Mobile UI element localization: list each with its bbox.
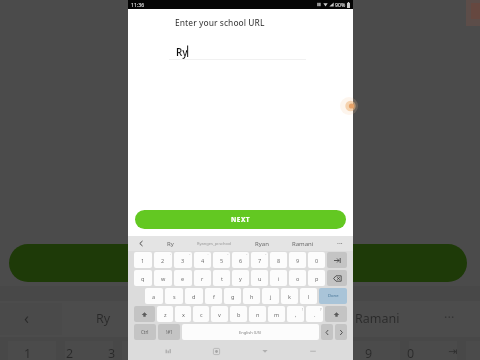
button[interactable]: Shift <box>134 306 155 322</box>
button[interactable]: 4 <box>194 252 211 268</box>
staticText: ! <box>302 307 303 312</box>
button[interactable]: l <box>300 288 317 304</box>
button[interactable]: Ramani <box>280 236 326 251</box>
staticText: p <box>315 275 319 282</box>
staticText: x <box>182 311 185 318</box>
staticText: ˘ <box>246 253 248 258</box>
button[interactable]: Back <box>256 342 274 360</box>
button[interactable]: 6 <box>232 252 249 268</box>
staticText: Ramani <box>292 240 314 248</box>
button[interactable]: English (US) <box>182 324 319 340</box>
button[interactable]: 2 <box>154 252 172 268</box>
button[interactable]: e <box>174 270 192 286</box>
staticText: ··· <box>444 308 455 326</box>
button[interactable]: d <box>185 288 203 304</box>
button[interactable]: 5 <box>213 252 230 268</box>
button[interactable]: t <box>213 270 230 286</box>
button[interactable]: v <box>211 306 228 322</box>
button[interactable]: u <box>251 270 268 286</box>
button[interactable]: j <box>262 288 279 304</box>
button[interactable]: Ry <box>154 236 186 251</box>
button[interactable]: 7 <box>251 252 268 268</box>
button[interactable]: 1 <box>134 252 152 268</box>
staticText: b <box>237 311 241 318</box>
button[interactable]: b <box>230 306 247 322</box>
staticText: ? <box>320 307 322 312</box>
staticText: 8 <box>277 257 281 264</box>
staticText: Ry <box>167 240 174 248</box>
staticText: ¨ <box>207 253 210 258</box>
button[interactable]: !#1 <box>158 324 180 340</box>
staticText: Ryanges_pr.school <box>197 241 232 246</box>
button[interactable]: Shift <box>325 306 347 322</box>
button[interactable]: Ryanges_pr.school <box>186 236 243 251</box>
staticText: s <box>173 293 176 300</box>
button[interactable]: g <box>224 288 241 304</box>
staticText: ´ <box>170 253 171 258</box>
button[interactable]: m <box>268 306 285 322</box>
button[interactable]: 0 <box>308 252 325 268</box>
staticText: ˇ <box>189 253 191 258</box>
button[interactable]: Previous suggestions <box>128 236 154 251</box>
button[interactable]: Move cursor left <box>321 324 333 340</box>
button[interactable]: Move cursor right <box>335 324 347 340</box>
button[interactable]: Done <box>319 288 347 304</box>
button[interactable]: Backspace <box>327 270 347 286</box>
staticText: ˆ <box>265 253 267 258</box>
staticText: 11:36 <box>131 1 145 8</box>
staticText: ⇥ <box>448 345 458 358</box>
button[interactable]: Ryan <box>243 236 280 251</box>
button[interactable]: Home <box>207 342 225 360</box>
button[interactable]: More options <box>326 236 353 251</box>
button[interactable]: , <box>287 306 304 322</box>
staticText: 4 <box>201 257 205 264</box>
staticText: 0 <box>407 345 415 360</box>
staticText: d <box>192 293 196 300</box>
button[interactable]: 3 <box>174 252 192 268</box>
button[interactable]: f <box>205 288 222 304</box>
staticText: Ryan <box>255 240 269 248</box>
staticText: 5 <box>220 257 224 264</box>
button[interactable]: a <box>145 288 163 304</box>
staticText: 3 <box>108 345 116 360</box>
button[interactable]: Tab <box>327 252 347 268</box>
button[interactable]: q <box>134 270 152 286</box>
staticText: 6 <box>239 257 243 264</box>
button[interactable]: h <box>243 288 260 304</box>
staticText: Ry <box>176 46 188 59</box>
button[interactable]: o <box>289 270 306 286</box>
staticText: 1 <box>24 345 32 360</box>
staticText: l <box>308 293 310 300</box>
button[interactable]: NEXT <box>135 210 346 229</box>
button[interactable]: k <box>281 288 298 304</box>
button[interactable]: c <box>193 306 209 322</box>
staticText: i <box>278 275 280 282</box>
button[interactable]: Ctrl <box>134 324 156 340</box>
staticText: 1 <box>141 257 145 264</box>
staticText: 90% <box>335 1 346 8</box>
button[interactable]: 9 <box>289 252 306 268</box>
staticText: Ctrl <box>141 329 149 335</box>
button[interactable]: r <box>194 270 211 286</box>
staticText: Done <box>328 293 339 299</box>
staticText: 9 <box>365 345 373 360</box>
button[interactable]: Recents <box>159 342 177 360</box>
button[interactable]: i <box>270 270 287 286</box>
button[interactable]: Hide keyboard <box>304 342 322 360</box>
staticText: v <box>218 311 221 318</box>
staticText: 7 <box>258 257 262 264</box>
button[interactable]: 8 <box>270 252 287 268</box>
staticText: w <box>161 275 166 282</box>
button[interactable]: . <box>306 306 323 322</box>
staticText: h <box>250 293 254 300</box>
button[interactable]: p <box>308 270 325 286</box>
staticText: z <box>164 311 167 318</box>
button[interactable]: y <box>232 270 249 286</box>
button[interactable]: x <box>175 306 191 322</box>
button[interactable]: s <box>165 288 183 304</box>
staticText: u <box>258 275 262 282</box>
button[interactable]: w <box>154 270 172 286</box>
button[interactable]: z <box>157 306 173 322</box>
staticText: r <box>201 275 204 282</box>
button[interactable]: n <box>249 306 266 322</box>
